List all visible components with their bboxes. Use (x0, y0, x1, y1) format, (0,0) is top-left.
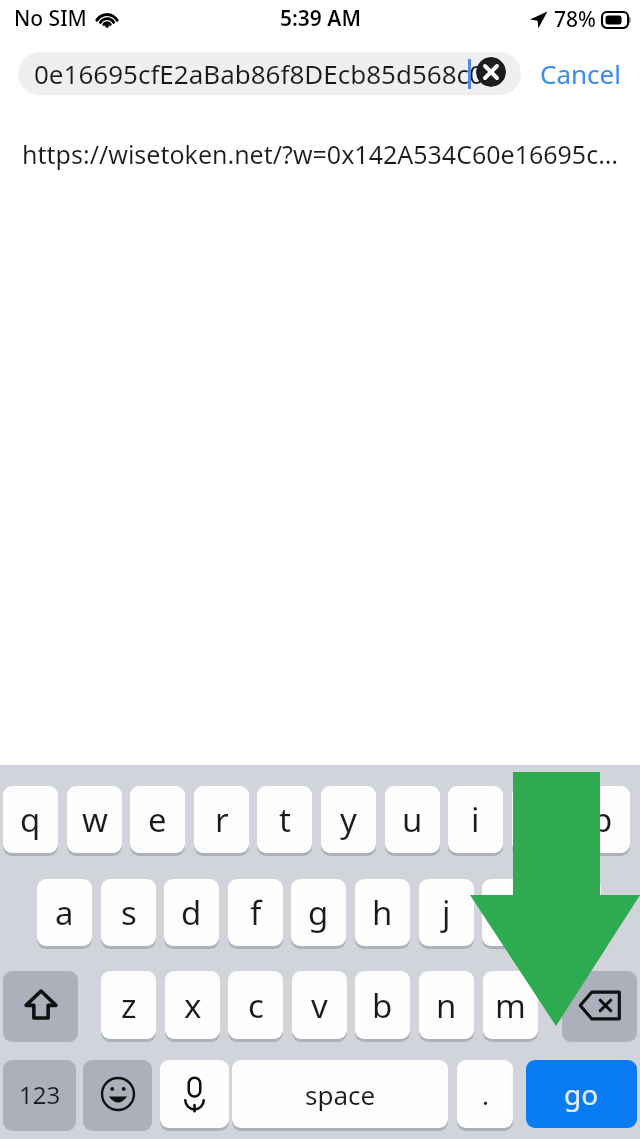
button[interactable]: j (419, 879, 474, 949)
staticText: No SIM (14, 4, 87, 33)
button[interactable]: i (448, 786, 503, 856)
button[interactable]: Clear text (476, 57, 506, 87)
button[interactable]: v (292, 971, 347, 1042)
staticText: q (20, 797, 41, 842)
staticText: r (215, 797, 229, 842)
staticText: 123 (19, 1078, 61, 1111)
staticText: 78% (554, 5, 596, 34)
button[interactable]: r (194, 786, 249, 856)
staticText: . (482, 1077, 489, 1112)
button[interactable]: Cancel (528, 52, 632, 95)
button[interactable]: n (419, 971, 474, 1042)
button[interactable]: Backspace (562, 971, 637, 1042)
button[interactable]: https://wisetoken.net/?w=0x142A534C60e16… (0, 128, 640, 180)
button[interactable]: h (355, 879, 410, 949)
staticText: b (372, 983, 393, 1028)
staticText: x (184, 983, 202, 1028)
staticText: j (442, 890, 451, 935)
staticText: m (495, 983, 526, 1028)
staticText: z (121, 983, 137, 1028)
staticText: v (311, 983, 328, 1028)
staticText: i (471, 797, 480, 842)
staticText: k (501, 890, 519, 935)
button[interactable]: Shift (3, 971, 78, 1042)
button[interactable]: x (165, 971, 220, 1042)
staticText: Cancel (540, 56, 621, 91)
button[interactable]: e (130, 786, 185, 856)
button[interactable]: d (164, 879, 219, 949)
button[interactable]: k (482, 879, 537, 949)
staticText: n (436, 983, 457, 1028)
staticText: h (372, 890, 393, 935)
staticText: e (148, 797, 167, 842)
staticText: space (305, 1077, 376, 1112)
staticText: https://wisetoken.net/?w=0x142A534C60e16… (22, 137, 618, 171)
button[interactable]: y (321, 786, 376, 856)
staticText: 5:39 AM (280, 4, 361, 33)
button[interactable]: a (37, 879, 92, 949)
button[interactable]: go (526, 1060, 637, 1128)
button[interactable]: 0e16695cfE2aBab86f8DEcb85d568c0 (18, 52, 521, 95)
button[interactable]: Dictation (160, 1060, 229, 1131)
button[interactable]: . (457, 1060, 513, 1131)
button[interactable]: z (101, 971, 156, 1042)
staticText: s (121, 890, 137, 935)
staticText: y (340, 797, 357, 842)
staticText: d (181, 890, 202, 935)
staticText: u (402, 797, 423, 842)
button[interactable]: s (101, 879, 156, 949)
staticText: a (55, 890, 74, 935)
staticText: f (250, 890, 262, 935)
staticText: p (592, 797, 613, 842)
button[interactable]: q (3, 786, 58, 856)
button[interactable]: c (228, 971, 283, 1042)
button[interactable]: w (67, 786, 122, 856)
button[interactable]: p (575, 786, 630, 856)
staticText: t (279, 797, 291, 842)
staticText: w (82, 797, 108, 842)
button[interactable]: space (232, 1060, 448, 1131)
button[interactable]: o (512, 786, 567, 856)
button[interactable]: Emoji keyboard (83, 1060, 152, 1131)
button[interactable]: f (228, 879, 283, 949)
button[interactable]: 123 (3, 1060, 76, 1131)
button[interactable]: m (483, 971, 538, 1042)
staticText: c (248, 983, 264, 1028)
button[interactable]: u (385, 786, 440, 856)
staticText: go (564, 1075, 599, 1113)
button[interactable]: b (355, 971, 410, 1042)
staticText: 0e16695cfE2aBab86f8DEcb85d568c0 (34, 56, 484, 91)
button[interactable]: t (257, 786, 312, 856)
button[interactable]: g (291, 879, 346, 949)
button[interactable]: l (546, 879, 601, 949)
staticText: g (308, 890, 329, 935)
